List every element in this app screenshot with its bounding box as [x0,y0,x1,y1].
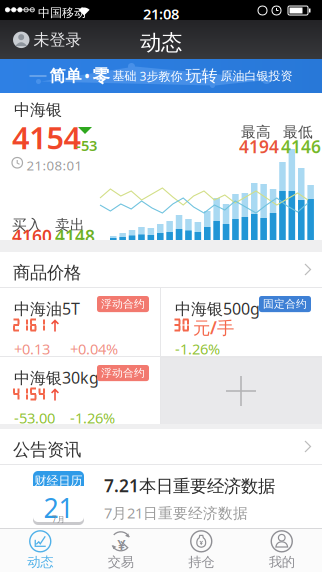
staticText: 浮动合约 [101,366,145,380]
staticText: 7.21本日重要经济数据 [104,474,275,497]
staticText: 动态 [27,554,53,570]
button[interactable] [161,358,322,424]
button[interactable]: 未登录 [0,30,81,50]
staticText: 元/手 [193,316,234,339]
staticText: 4194 [239,135,279,158]
staticText: -53 [76,135,97,155]
button[interactable]: 财经日历 [0,465,322,528]
staticText: 21:08:01 [26,156,82,174]
button[interactable]: 中海银500g [161,288,322,356]
staticText: 浮动合约 [101,297,145,311]
staticText: 最低 [283,123,313,141]
staticText: 3步教你 [139,68,182,84]
staticText: • [84,67,89,85]
staticText: 中海银30kg [14,367,99,388]
staticText: -53.00 [14,408,55,427]
staticText: 持仓 [188,554,214,570]
staticText: ¥ [117,535,125,554]
button[interactable]: 持仓 [161,529,241,572]
button[interactable]: ¥ [80,529,161,572]
staticText: 未登录 [33,30,81,50]
staticText: 商品价格 [13,262,81,283]
staticText: 公告资讯 [13,439,81,460]
staticText: 7月 [52,514,65,525]
staticText: 7月21日重要经济数据 [104,503,248,522]
staticText: 交易 [108,554,134,570]
staticText: 卖出 [55,216,85,234]
staticText: 21 [43,490,73,525]
button[interactable]: 中海银30kg [0,357,160,425]
staticText: 21:08 [143,4,179,23]
staticText: 4154 [12,117,82,158]
staticText: 财经日历 [34,473,82,488]
staticText: +0.04% [70,339,118,358]
staticText: -1.26% [175,339,220,358]
staticText: 最高 [241,123,271,141]
staticText: -1.26% [70,408,115,427]
staticText: 固定合约 [263,297,307,311]
button[interactable]: 公告资讯 [0,429,322,464]
button[interactable]: 商品价格 [0,252,322,287]
button[interactable]: 动态 [0,529,80,572]
staticText: 4160 [12,224,52,247]
button[interactable]: 简单 [0,59,322,93]
staticText: 4146 [281,135,321,158]
staticText: 4148 [55,224,95,247]
staticText: 中海银 [14,100,62,120]
staticText: 零 [92,65,109,87]
staticText: 中国移动 [38,5,86,20]
staticText: 简单 [49,66,81,86]
staticText: 中海油5T [14,298,80,319]
staticText: 玩转 [185,66,217,86]
staticText: 基础 [112,69,136,83]
staticText: 动态 [140,29,182,56]
staticText: 买入 [12,216,42,234]
staticText: 原油白银投资 [220,69,292,83]
staticText: 我的 [269,554,295,570]
button[interactable]: 中海油5T [0,288,160,356]
staticText: 中海银500g [175,298,260,319]
button[interactable]: 中海银 [0,93,322,240]
staticText: +0.13 [14,339,50,358]
button[interactable]: 我的 [241,529,322,572]
